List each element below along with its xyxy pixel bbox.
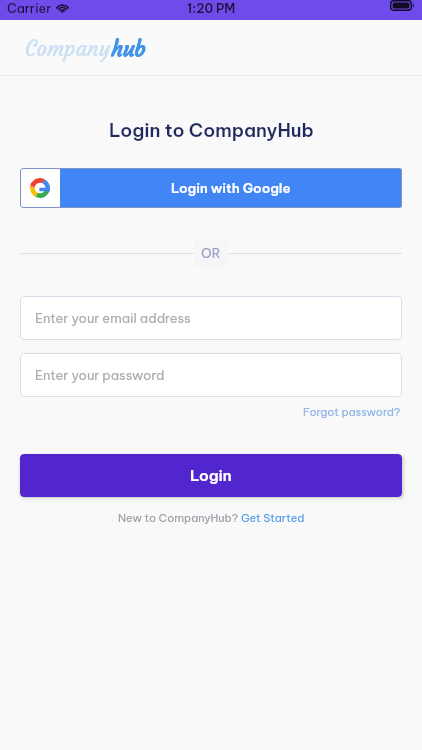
staticText: hub bbox=[112, 35, 147, 61]
staticText: New to CompanyHub? bbox=[118, 511, 241, 525]
button[interactable]: Enter your password bbox=[20, 353, 402, 397]
button[interactable]: Login bbox=[20, 454, 402, 497]
staticText: Enter your password bbox=[35, 367, 165, 383]
staticText: Carrier bbox=[7, 0, 52, 16]
staticText: Company bbox=[25, 35, 111, 61]
staticText: Login bbox=[190, 466, 232, 485]
button[interactable]: Login with Google bbox=[20, 168, 402, 208]
staticText: hub bbox=[111, 35, 146, 61]
button[interactable]: Enter your email address bbox=[20, 296, 402, 340]
staticText: OR bbox=[201, 245, 221, 261]
staticText: Enter your email address bbox=[35, 310, 191, 326]
staticText: Login with Google bbox=[171, 180, 291, 197]
staticText: 1:20 PM bbox=[187, 0, 236, 16]
staticText: Login to CompanyHub bbox=[109, 118, 314, 141]
staticText: hub bbox=[111, 36, 146, 62]
button[interactable]: Get Started bbox=[241, 511, 305, 525]
button[interactable]: Forgot password? bbox=[303, 405, 401, 419]
